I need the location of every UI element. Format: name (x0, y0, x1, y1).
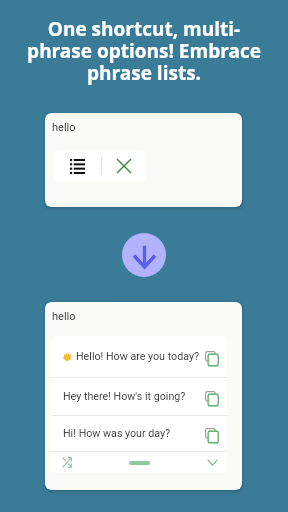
button[interactable]: Hey there! How's it going? (51, 378, 227, 415)
button[interactable]: Shuffle (53, 452, 81, 473)
staticText: Hi! How was your day? (63, 427, 171, 440)
button[interactable]: Scroll down (122, 233, 166, 277)
staticText: hello (52, 121, 76, 134)
staticText: One shortcut, multi- phrase options! Emb… (10, 16, 278, 85)
button[interactable]: Close (102, 150, 146, 182)
staticText: Hello! How are you today? (76, 350, 200, 363)
button[interactable]: Phrase list (53, 150, 101, 182)
button[interactable]: Collapse (198, 452, 226, 473)
button[interactable]: Hi! How was your day? (51, 416, 227, 451)
staticText: Hey there! How's it going? (63, 390, 186, 403)
button[interactable]: Hello! How are you today? (51, 336, 227, 377)
staticText: hello (52, 310, 76, 323)
